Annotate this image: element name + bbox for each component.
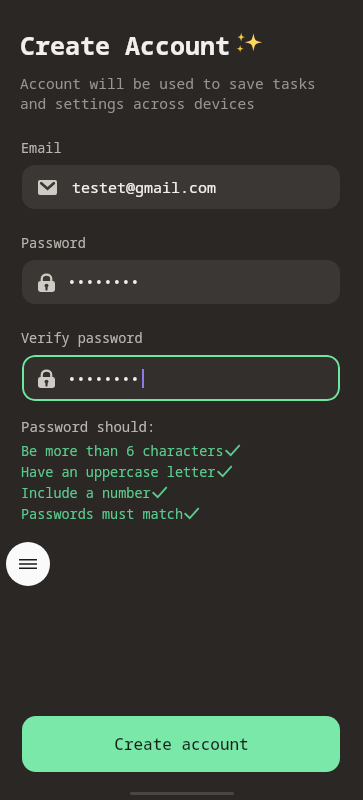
staticText: Include a number [21,484,151,502]
button[interactable] [22,355,340,401]
staticText: Email [21,139,62,157]
staticText: Have an uppercase letter [21,463,216,481]
staticText: Password should: [21,417,156,436]
staticText: testet@gmail.com [72,177,217,197]
staticText: Verify password [21,329,143,347]
staticText: Be more than 6 characters [21,442,224,460]
staticText: Passwords must match [21,505,183,523]
button[interactable]: testet@gmail.com [22,165,340,209]
staticText: Create Account [20,28,231,62]
button[interactable]: Create account [22,716,340,772]
staticText: Password [21,234,86,252]
staticText: Account will be used to save tasks and s… [20,73,316,114]
button[interactable] [22,260,340,304]
button[interactable]: Menu [6,542,50,586]
staticText: Create account [114,733,249,755]
